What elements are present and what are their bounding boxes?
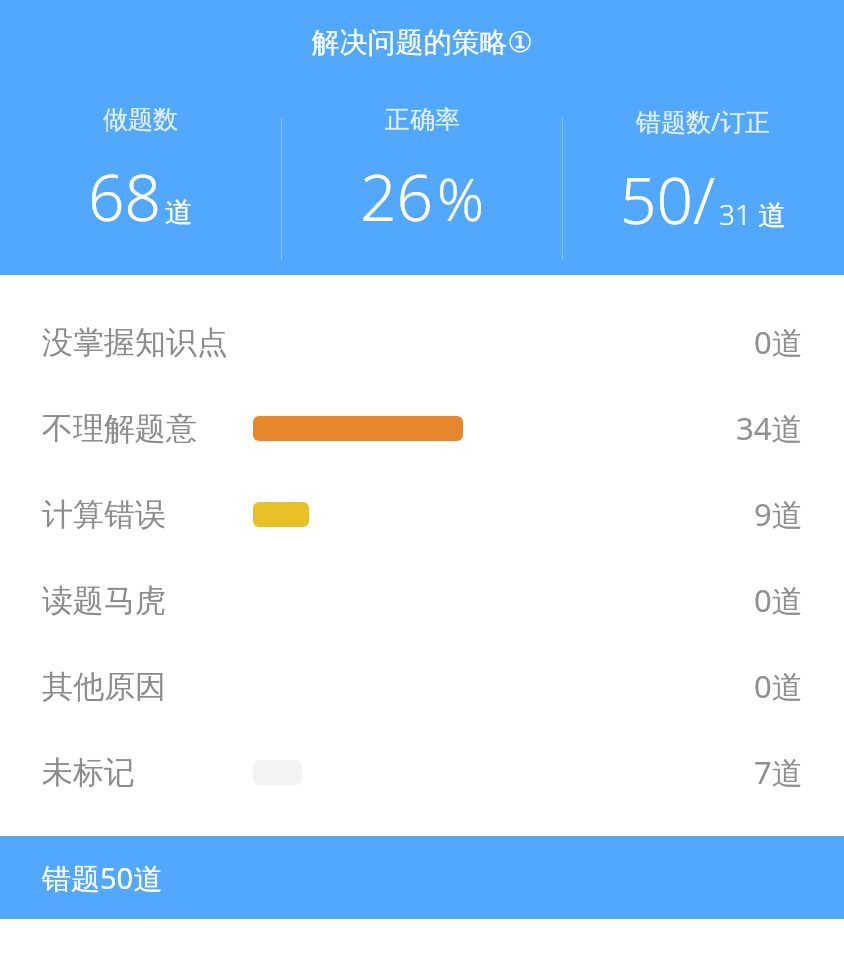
button[interactable]: 其他原因 [0,643,844,729]
staticText: 0道 [754,321,803,363]
staticText: 错题数/订正 [636,104,771,138]
staticText: 其他原因 [42,667,166,706]
button[interactable]: 不理解题意 [0,385,844,471]
staticText: 正确率 [385,104,460,135]
button[interactable]: 错题50道 [0,836,844,919]
staticText: 9道 [754,493,803,535]
staticText: 68 [88,153,162,240]
staticText: 计算错误 [42,495,166,534]
staticText: 解决问题的策略① [0,25,844,60]
button[interactable]: 错题数/订正 [563,104,844,243]
staticText: 0道 [754,579,803,621]
staticText: 7道 [754,751,803,793]
staticText: 26 [360,153,434,240]
staticText: 没掌握知识点 [42,323,228,362]
staticText: 道 [165,195,193,230]
button[interactable]: 读题马虎 [0,557,844,643]
staticText: 0道 [754,665,803,707]
button[interactable]: 未标记 [0,729,844,815]
staticText: 错题50道 [42,858,163,898]
staticText: 31 道 [719,195,787,233]
button[interactable]: 做题数 [0,104,281,240]
button[interactable]: 没掌握知识点 [0,299,844,385]
button[interactable]: 计算错误 [0,471,844,557]
staticText: % [437,159,485,238]
button[interactable]: 正确率 [282,104,562,240]
staticText: 不理解题意 [42,409,197,448]
staticText: 34道 [736,407,803,449]
staticText: 50/ [620,156,716,243]
staticText: 做题数 [103,104,178,135]
staticText: 读题马虎 [42,581,166,620]
staticText: 未标记 [42,753,135,792]
